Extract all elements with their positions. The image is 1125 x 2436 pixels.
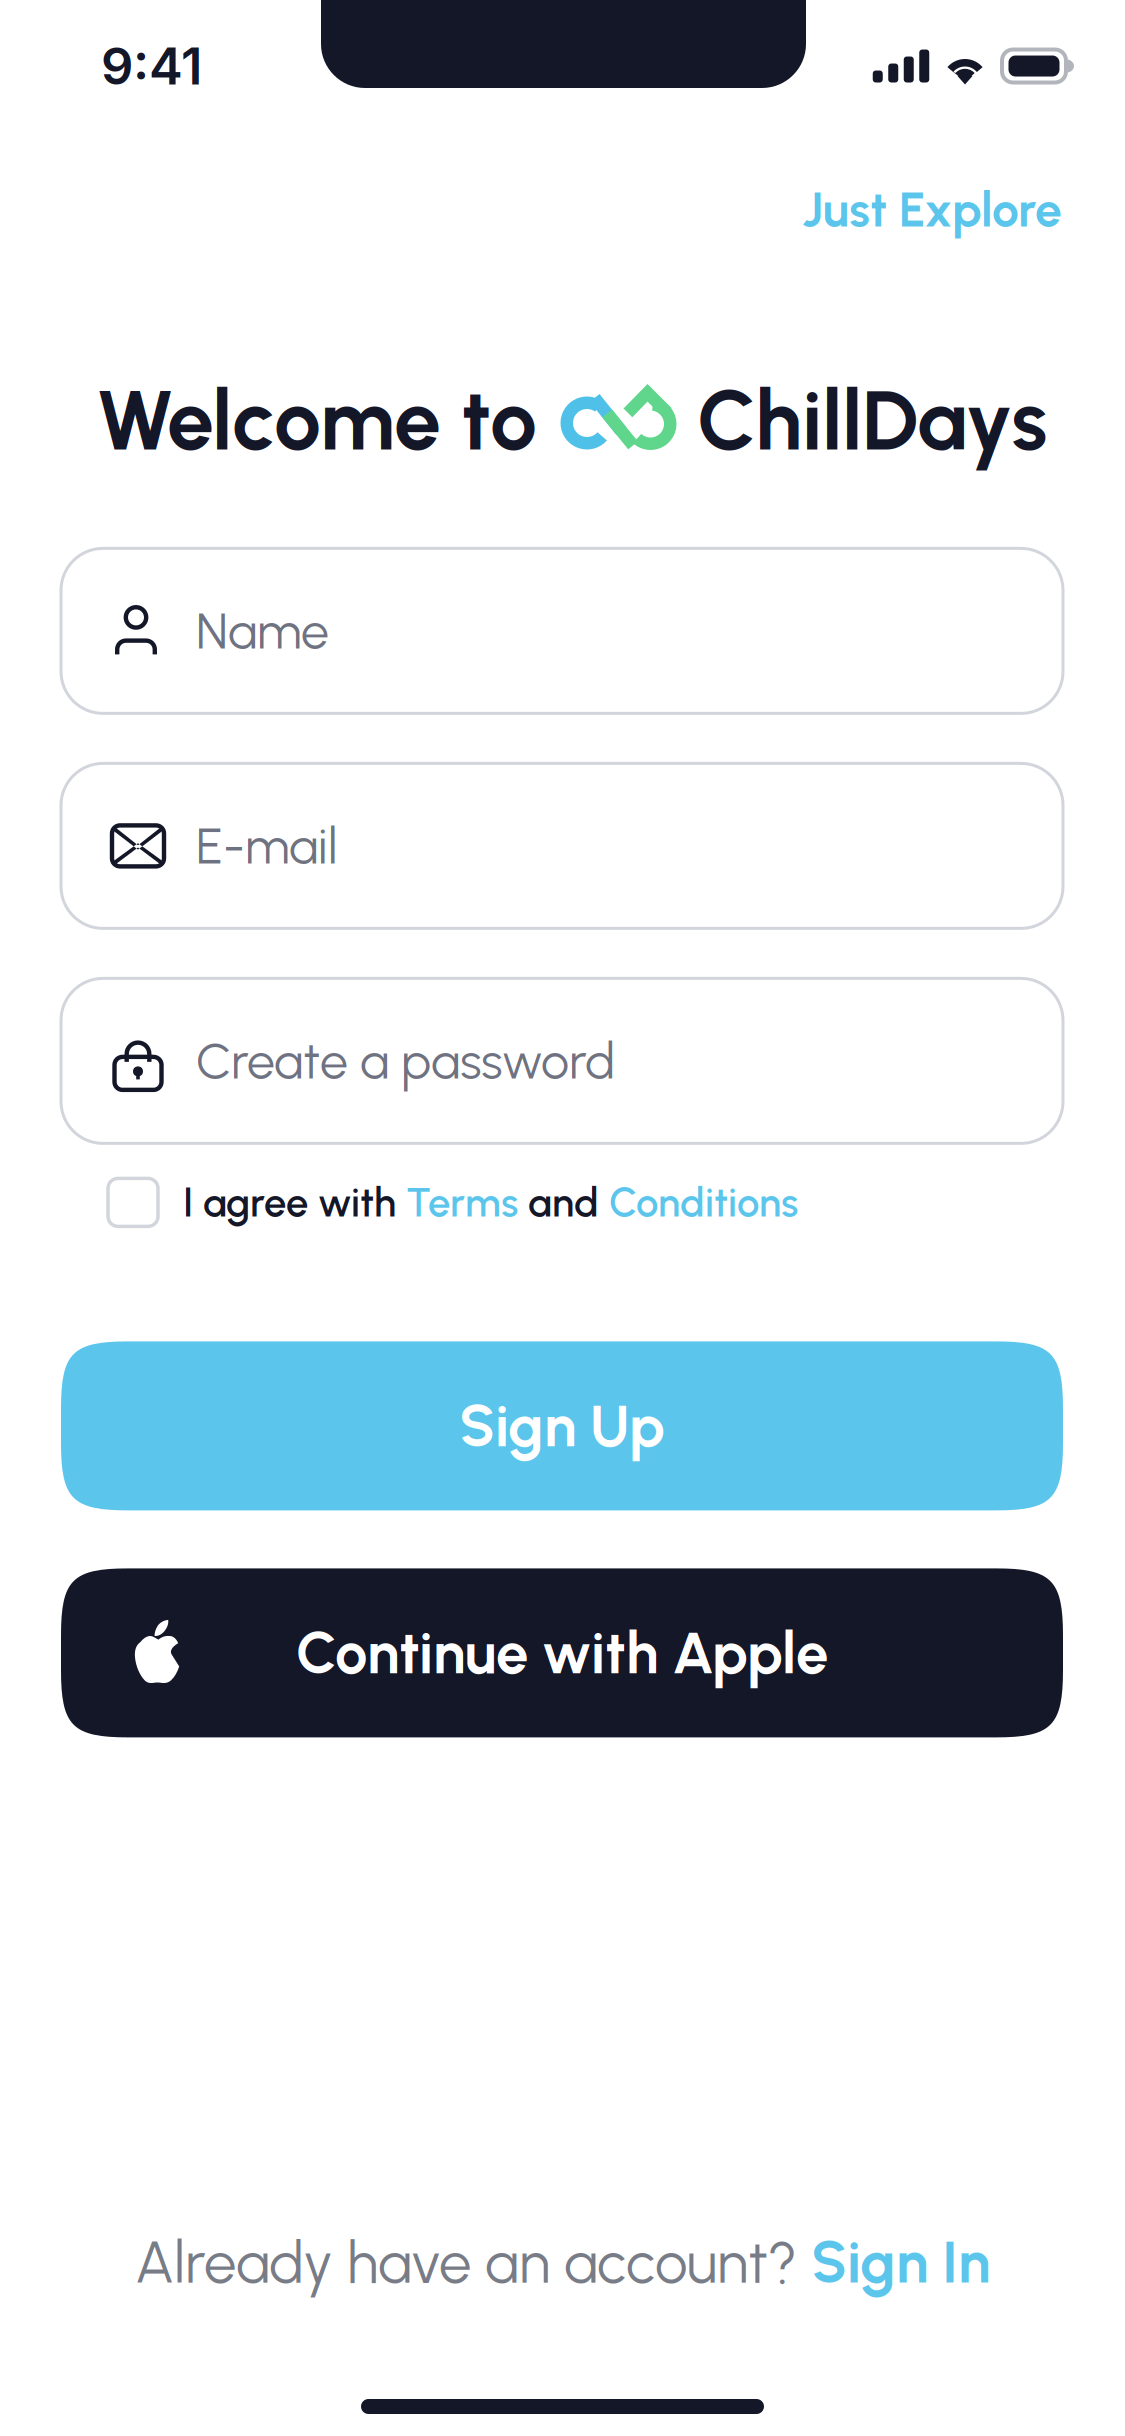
staticText: Conditions xyxy=(609,1178,798,1226)
staticText: Welcome to xyxy=(96,370,537,470)
staticText: Already have an account? xyxy=(135,2227,811,2297)
staticText: 9:41 xyxy=(101,35,202,97)
staticText: I agree with xyxy=(183,1178,406,1226)
button[interactable]: Already have an account? xyxy=(111,2203,1014,2321)
button[interactable]: Just Explore xyxy=(771,155,1093,265)
staticText: E-mail xyxy=(196,816,338,876)
staticText: Terms xyxy=(406,1178,518,1226)
staticText: ChillDays xyxy=(697,370,1047,470)
staticText: Just Explore xyxy=(802,181,1062,239)
staticText: Continue with Apple xyxy=(296,1618,828,1688)
staticText: Sign In xyxy=(811,2227,990,2297)
staticText: Create a password xyxy=(196,1031,615,1091)
button[interactable]: Continue with Apple xyxy=(61,1568,1063,1737)
staticText: and xyxy=(518,1178,609,1226)
button[interactable]: Sign Up xyxy=(61,1341,1063,1510)
button[interactable]: I agree with xyxy=(0,1143,1125,1256)
staticText: Sign Up xyxy=(459,1391,665,1461)
staticText: Name xyxy=(196,601,329,661)
